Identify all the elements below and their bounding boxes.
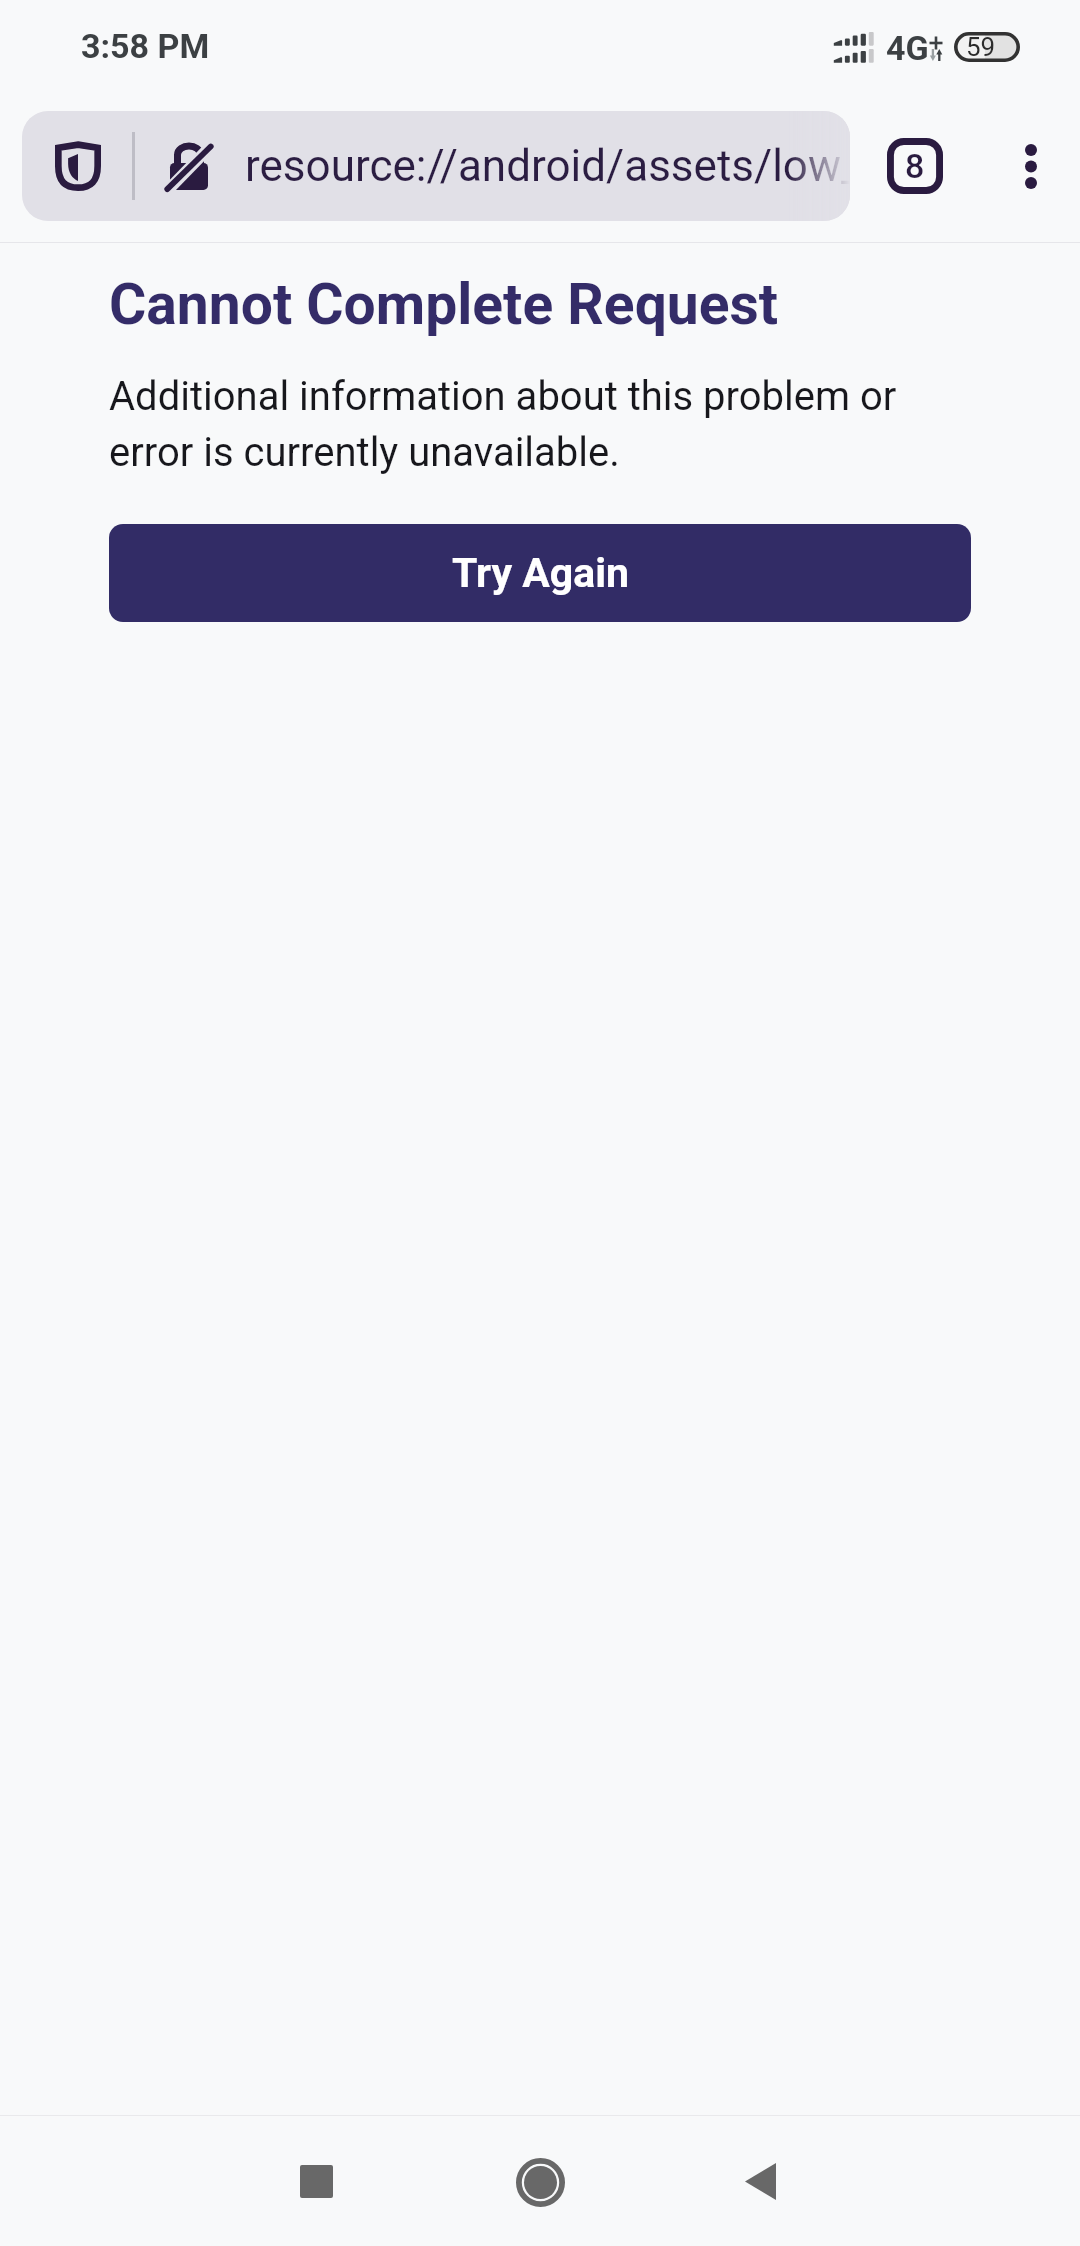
button[interactable]: Try Again xyxy=(109,524,971,622)
staticText: 59 xyxy=(966,32,996,62)
staticText: Try Again xyxy=(452,549,629,597)
button[interactable]: Recent apps xyxy=(246,2116,386,2246)
staticText: 3:58 PM xyxy=(81,26,210,66)
button[interactable]: Brave Shields xyxy=(22,111,850,221)
button[interactable]: Connection not secure xyxy=(144,111,234,221)
button[interactable]: More options xyxy=(987,122,1075,210)
staticText: Cannot Complete Request xyxy=(109,271,779,338)
staticText: Additional information about this proble… xyxy=(109,373,949,476)
button[interactable]: Back xyxy=(690,2116,830,2246)
staticText: resource://android/assets/low_ xyxy=(245,140,850,192)
button[interactable]: Home xyxy=(470,2117,610,2246)
button[interactable]: Tabs, 8 open xyxy=(869,120,961,212)
staticText: 8 xyxy=(905,146,925,186)
button[interactable]: Brave Shields xyxy=(22,111,133,221)
staticText: 4G xyxy=(886,28,929,68)
